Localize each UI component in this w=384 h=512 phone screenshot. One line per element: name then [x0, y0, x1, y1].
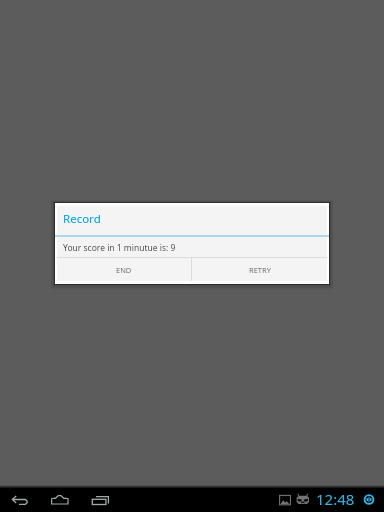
button[interactable]: Home: [48, 488, 72, 512]
staticText: Record: [63, 211, 101, 227]
staticText: RETRY: [249, 265, 271, 275]
button[interactable]: RETRY: [192, 258, 327, 281]
staticText: END: [116, 265, 132, 275]
staticText: Your score in 1 minutue is: 9: [63, 242, 176, 254]
button[interactable]: Recent apps: [88, 488, 112, 512]
button[interactable]: Back: [8, 488, 32, 512]
staticText: 12:48: [316, 489, 355, 509]
button[interactable]: END: [57, 258, 191, 281]
